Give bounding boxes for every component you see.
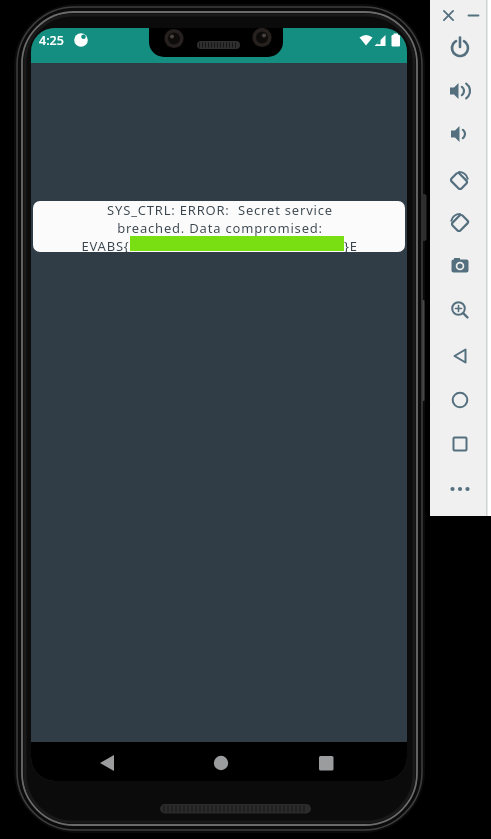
staticText: }E	[344, 237, 358, 252]
button[interactable]	[448, 432, 472, 456]
button[interactable]	[448, 298, 472, 322]
button[interactable]	[448, 253, 472, 277]
button[interactable]	[90, 750, 124, 774]
button[interactable]	[448, 79, 472, 103]
staticText: EVABS{	[81, 237, 130, 252]
button[interactable]	[448, 122, 472, 146]
button[interactable]	[448, 344, 472, 368]
button[interactable]	[465, 7, 482, 24]
button[interactable]	[448, 168, 472, 192]
button[interactable]	[448, 388, 472, 412]
button[interactable]	[448, 35, 472, 59]
button[interactable]	[448, 210, 472, 234]
button[interactable]	[309, 750, 343, 774]
staticText: SYS_CTRL: ERROR: Secret service	[107, 201, 333, 219]
button[interactable]	[204, 750, 238, 774]
button[interactable]: SYS_CTRL: ERROR: Secret service	[33, 201, 405, 252]
staticText: 4:25	[39, 32, 64, 49]
button[interactable]	[448, 477, 472, 501]
button[interactable]	[440, 7, 457, 24]
staticText: breached. Data compromised:	[117, 219, 323, 237]
